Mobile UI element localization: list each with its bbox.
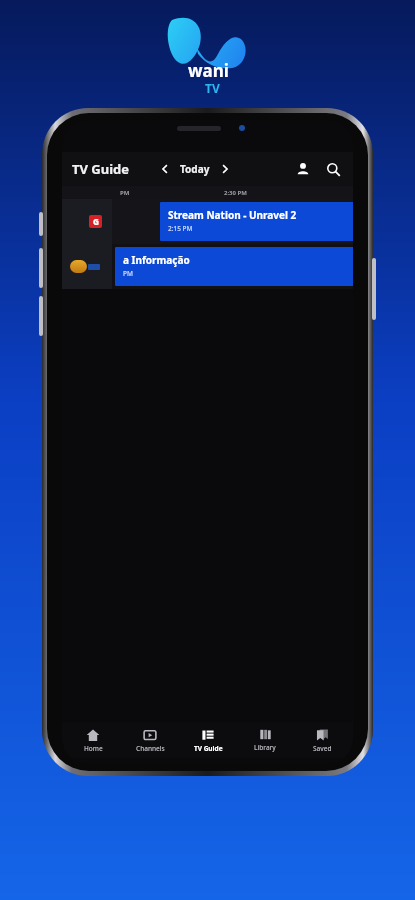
staticText: Stream Nation - Unravel 2 bbox=[168, 208, 297, 222]
button[interactable]: Home bbox=[67, 725, 119, 756]
button[interactable]: Library bbox=[239, 725, 291, 755]
button[interactable]: Previous day bbox=[156, 160, 174, 178]
button[interactable]: Channel bbox=[62, 244, 112, 289]
button[interactable]: Saved bbox=[296, 725, 348, 756]
button[interactable]: Next day bbox=[216, 160, 234, 178]
staticText: 2:30 PM bbox=[224, 189, 247, 197]
button[interactable]: Account bbox=[291, 157, 315, 181]
staticText: wani bbox=[188, 59, 229, 82]
staticText: Saved bbox=[313, 744, 332, 753]
button[interactable]: TV Guide bbox=[182, 725, 234, 756]
button[interactable]: Channel bbox=[62, 199, 112, 244]
staticText: 2:15 PM bbox=[168, 224, 193, 233]
button[interactable]: a Informação bbox=[115, 247, 353, 286]
button[interactable]: Search bbox=[321, 157, 345, 181]
staticText: Library bbox=[254, 743, 276, 752]
staticText: TV Guide bbox=[72, 160, 130, 178]
staticText: TV Guide bbox=[194, 744, 223, 753]
button[interactable]: Stream Nation - Unravel 2 bbox=[160, 202, 353, 241]
staticText: PM bbox=[123, 269, 133, 278]
staticText: Channels bbox=[136, 744, 165, 753]
staticText: G bbox=[93, 216, 99, 227]
button[interactable]: Channels bbox=[124, 725, 176, 756]
staticText: a Informação bbox=[123, 253, 190, 267]
staticText: Today bbox=[180, 162, 210, 176]
staticText: TV bbox=[205, 80, 220, 96]
button[interactable]: Today bbox=[174, 162, 216, 176]
staticText: PM bbox=[120, 189, 130, 197]
staticText: Home bbox=[84, 744, 103, 753]
